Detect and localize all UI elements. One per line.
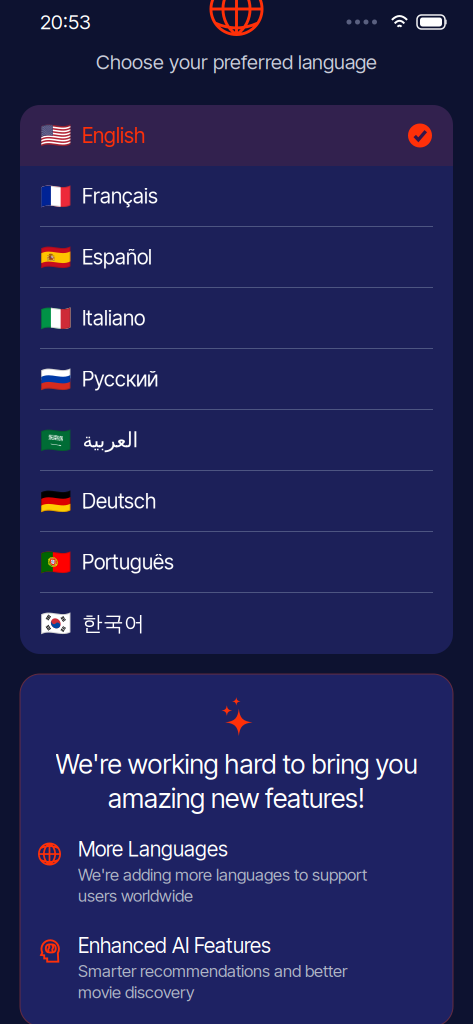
staticText: We're working hard to bring you [55, 748, 417, 780]
staticText: 🇩🇪 [40, 486, 72, 515]
staticText: العربية [82, 428, 138, 452]
staticText: More Languages [78, 836, 228, 861]
button[interactable]: 🇵🇹 [20, 532, 453, 593]
staticText: Русский [82, 366, 158, 391]
button[interactable]: 🇷🇺 [20, 349, 453, 410]
staticText: amazing new features! [108, 782, 365, 815]
staticText: users worldwide [78, 886, 193, 906]
staticText: 🇷🇺 [40, 364, 72, 393]
button[interactable]: 🇪🇸 [20, 227, 453, 288]
button[interactable]: 🇸🇦 [20, 410, 453, 471]
staticText: Español [82, 244, 152, 269]
staticText: movie discovery [78, 982, 194, 1002]
button[interactable]: 🇮🇹 [20, 288, 453, 349]
staticText: Português [82, 549, 174, 574]
staticText: 🇫🇷 [40, 181, 72, 210]
staticText: Deutsch [82, 488, 156, 513]
staticText: Smarter recommendations and better [78, 961, 347, 981]
button[interactable]: 🇺🇸 [20, 105, 453, 166]
staticText: 🇸🇦 [40, 425, 72, 454]
button[interactable]: 🇫🇷 [20, 166, 453, 227]
staticText: Italiano [82, 305, 145, 330]
staticText: English [82, 123, 145, 148]
staticText: 🇮🇹 [40, 303, 72, 332]
staticText: 🇪🇸 [40, 242, 72, 271]
button[interactable]: 🇩🇪 [20, 471, 453, 532]
staticText: Français [82, 183, 158, 208]
button[interactable]: 🇰🇷 [20, 593, 453, 654]
staticText: 20:53 [40, 10, 91, 34]
staticText: 🇺🇸 [40, 121, 72, 150]
staticText: 한국어 [82, 610, 145, 636]
staticText: Choose your preferred language [96, 50, 377, 74]
staticText: 🇵🇹 [40, 547, 72, 576]
staticText: We're adding more languages to support [78, 864, 367, 885]
staticText: 🇰🇷 [40, 609, 72, 638]
staticText: Enhanced AI Features [78, 933, 271, 958]
